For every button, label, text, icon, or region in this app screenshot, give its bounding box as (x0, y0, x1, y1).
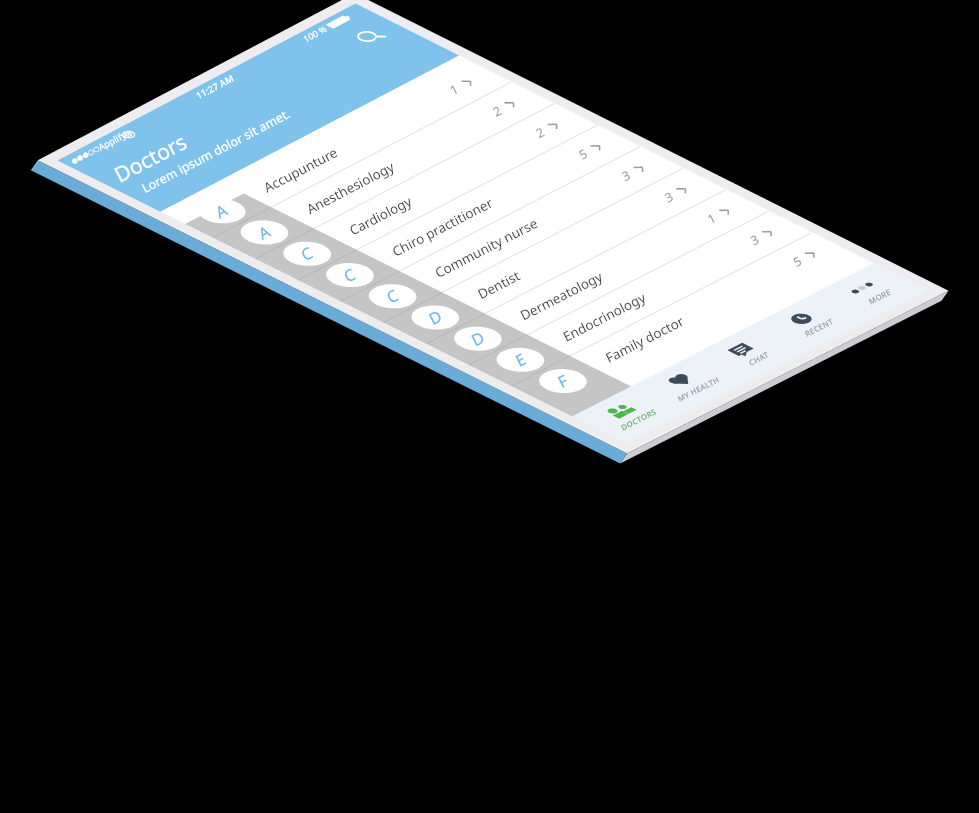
button[interactable]: MY HEALTH (632, 356, 746, 414)
button[interactable]: MORE (813, 263, 928, 321)
button[interactable] (485, 189, 770, 334)
button[interactable] (271, 82, 555, 229)
button[interactable]: RECENT (752, 294, 867, 352)
button[interactable] (228, 60, 511, 207)
button[interactable]: Search (330, 16, 407, 55)
button[interactable]: Index E (469, 335, 570, 386)
button[interactable]: Index D (426, 314, 527, 365)
button[interactable] (527, 211, 812, 356)
button[interactable]: DOCTORS (572, 386, 686, 443)
button[interactable]: Index C (298, 250, 399, 302)
button[interactable] (570, 232, 855, 377)
button[interactable]: Index A (170, 186, 271, 238)
button[interactable] (357, 125, 641, 271)
button[interactable]: Index F (511, 356, 612, 407)
button[interactable] (400, 146, 684, 292)
button[interactable]: Index C (255, 228, 356, 280)
button[interactable]: Index D (383, 292, 484, 343)
button[interactable]: Index A (213, 207, 314, 259)
button[interactable]: CHAT (692, 325, 807, 383)
button[interactable] (442, 168, 726, 314)
button[interactable] (314, 103, 598, 249)
button[interactable]: Index C (341, 271, 442, 323)
